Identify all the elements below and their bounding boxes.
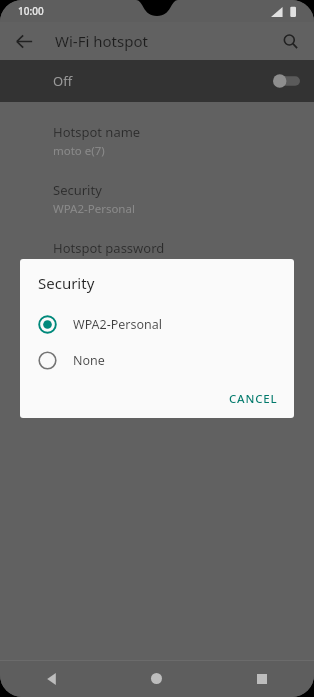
staticText: 10:00 bbox=[18, 4, 44, 18]
button[interactable]: Recent apps bbox=[209, 660, 314, 697]
staticText: WPA2-Personal bbox=[73, 316, 163, 333]
staticText: Off bbox=[53, 72, 73, 90]
button[interactable]: CANCEL bbox=[221, 384, 286, 414]
button[interactable]: None bbox=[20, 342, 294, 378]
button[interactable]: Hotspot password bbox=[0, 228, 314, 282]
button[interactable]: Hotspot name bbox=[0, 112, 314, 170]
staticText: Security bbox=[53, 181, 102, 199]
staticText: Hotspot name bbox=[53, 123, 141, 141]
staticText: Hotspot password bbox=[53, 239, 165, 257]
staticText: CANCEL bbox=[229, 391, 278, 407]
button[interactable]: Security bbox=[0, 170, 314, 228]
button[interactable]: Back bbox=[0, 660, 104, 697]
staticText: Security bbox=[38, 273, 95, 293]
button[interactable]: Home bbox=[104, 660, 209, 697]
button[interactable]: Off bbox=[0, 60, 314, 102]
staticText: None bbox=[73, 352, 105, 369]
staticText: Wi-Fi hotspot bbox=[55, 31, 148, 51]
button[interactable]: WPA2-Personal bbox=[20, 306, 294, 342]
staticText: WPA2-Personal bbox=[53, 201, 135, 217]
button[interactable]: Back bbox=[8, 25, 40, 57]
staticText: moto e(7) bbox=[53, 143, 105, 159]
button[interactable]: Search bbox=[274, 25, 306, 57]
